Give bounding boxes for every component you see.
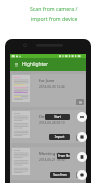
- staticText: Meeting doc: [39, 151, 64, 157]
- staticText: for June: [39, 78, 55, 84]
- button[interactable]: From file: [77, 152, 87, 162]
- staticText: Highlighter: [22, 61, 49, 68]
- button[interactable]: Meeting doc: [11, 147, 85, 180]
- button[interactable]: for June: [11, 74, 85, 107]
- button[interactable]: Start experimenting: [45, 114, 70, 120]
- staticText: import from device: [31, 15, 78, 22]
- button[interactable]: Start experimenting: [77, 112, 87, 122]
- staticText: Import document: [49, 135, 70, 139]
- staticText: Scan from camera /: [30, 5, 78, 12]
- staticText: Design notes: [39, 114, 65, 120]
- staticText: 2014-06-30 12:44: [39, 85, 65, 89]
- staticText: 2014-06-28 09:10: [39, 121, 65, 125]
- staticText: From file: [58, 154, 70, 158]
- staticText: 2014-06-21 18:30: [39, 158, 65, 162]
- staticText: Start experimenting: [45, 115, 70, 119]
- button[interactable]: Scan from camera: [50, 172, 70, 178]
- staticText: Scan from camera: [50, 173, 70, 177]
- button[interactable]: Import document: [49, 134, 70, 140]
- button[interactable]: Scan from camera: [77, 170, 87, 180]
- button[interactable]: Import document: [77, 132, 87, 142]
- button[interactable]: Design notes: [11, 110, 85, 143]
- button[interactable]: Open navigation drawer: [12, 60, 21, 69]
- button[interactable]: From file: [57, 153, 70, 159]
